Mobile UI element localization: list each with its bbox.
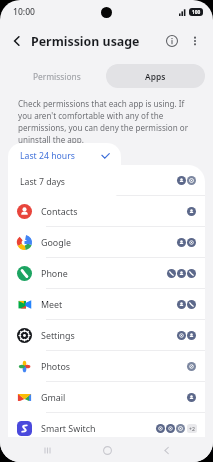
staticText: Check permissions that each app is using… (18, 98, 199, 145)
staticText: Meet (41, 298, 177, 310)
button[interactable]: Photos (8, 351, 205, 381)
staticText: Contacts (41, 205, 187, 217)
button[interactable]: Gmail (8, 382, 205, 412)
staticText: Last 24 hours (20, 150, 101, 162)
button[interactable]: Contacts (8, 196, 205, 226)
staticText: Permissions (33, 71, 81, 82)
staticText: Gmail (41, 391, 187, 403)
button[interactable]: Phone (8, 258, 205, 288)
staticText: Smart Switch (41, 422, 156, 434)
button[interactable]: Settings (8, 320, 205, 350)
button[interactable]: Permissions (8, 64, 106, 88)
button[interactable]: Recents (35, 438, 59, 462)
staticText: 100 (192, 9, 201, 16)
staticText: Photos (41, 360, 187, 372)
button[interactable]: Google (8, 227, 205, 257)
staticText: Camera (41, 174, 177, 186)
staticText: Google (41, 236, 177, 248)
button[interactable]: Back (154, 438, 178, 462)
button[interactable]: Home (95, 438, 119, 462)
button[interactable]: More options (184, 30, 206, 52)
staticText: Apps (145, 71, 166, 82)
button[interactable]: Last 7 days (8, 169, 121, 195)
button[interactable]: Smart Switch (8, 413, 205, 443)
button[interactable]: Camera (8, 165, 205, 195)
button[interactable]: Back (5, 29, 29, 53)
button[interactable]: Apps (106, 64, 205, 88)
staticText: Permission usage (31, 33, 140, 50)
button[interactable]: Information (161, 30, 183, 52)
button[interactable]: Last 24 hours (8, 143, 121, 169)
staticText: 10:00 (13, 6, 36, 18)
staticText: Phone (41, 267, 167, 279)
staticText: +2 (189, 425, 195, 432)
button[interactable]: Meet (8, 289, 205, 319)
staticText: Last 7 days (20, 176, 66, 188)
staticText: Settings (41, 329, 177, 341)
